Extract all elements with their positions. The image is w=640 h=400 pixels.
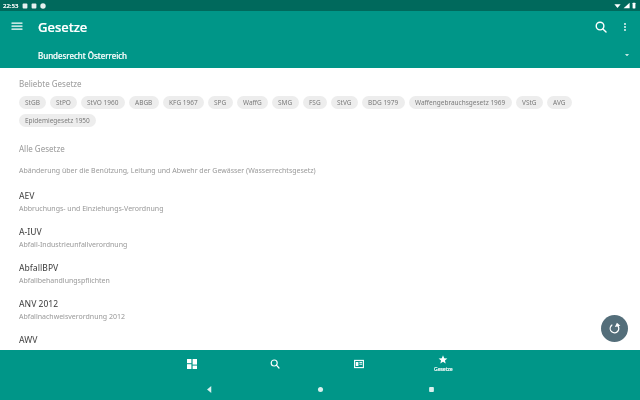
staticText: ANV 2012 xyxy=(19,298,59,310)
staticText: ABGB xyxy=(135,98,153,107)
button[interactable]: Back xyxy=(200,380,218,398)
button[interactable]: AVG xyxy=(547,96,572,109)
staticText: Abfallbehandlungspflichten xyxy=(19,276,110,286)
button[interactable]: Bundesrecht Österreich xyxy=(0,42,640,68)
staticText: Waffengebrauchsgesetz 1969 xyxy=(415,98,506,107)
button[interactable]: BDG 1979 xyxy=(362,96,405,109)
staticText: SPG xyxy=(214,98,227,107)
button[interactable]: Abänderung über die Benützung, Leitung u… xyxy=(0,166,640,190)
staticText: StPO xyxy=(56,98,71,107)
staticText: AEV xyxy=(19,190,35,202)
button[interactable]: Gesetze xyxy=(401,350,485,378)
staticText: 22:53 xyxy=(3,2,19,10)
button[interactable]: FSG xyxy=(303,96,327,109)
staticText: Epidemiegesetz 1950 xyxy=(25,116,90,125)
button[interactable]: Home xyxy=(311,380,329,398)
button[interactable]: KFG 1967 xyxy=(163,96,204,109)
button[interactable]: Übersicht xyxy=(150,350,233,378)
button[interactable]: Recent apps xyxy=(422,380,440,398)
button[interactable]: AEV xyxy=(0,190,640,226)
staticText: KFG 1967 xyxy=(169,98,198,107)
staticText: Abbruchungs- und Einziehungs-Verordnung xyxy=(19,204,164,214)
button[interactable]: Suche xyxy=(233,350,317,378)
staticText: VStG xyxy=(522,98,537,107)
staticText: AbfallBPV xyxy=(19,262,59,274)
staticText: Beliebte Gesetze xyxy=(19,78,82,89)
button[interactable]: Epidemiegesetz 1950 xyxy=(19,114,96,127)
button[interactable]: ANV 2012 xyxy=(0,298,640,334)
button[interactable]: AWV xyxy=(0,334,640,350)
button[interactable]: StPO xyxy=(50,96,77,109)
button[interactable]: SMG xyxy=(272,96,299,109)
button[interactable]: More options xyxy=(614,16,636,38)
staticText: StVG xyxy=(337,98,352,107)
button[interactable]: Waffengebrauchsgesetz 1969 xyxy=(409,96,512,109)
button[interactable]: StVG xyxy=(331,96,358,109)
staticText: StGB xyxy=(25,98,40,107)
button[interactable]: A-IUV xyxy=(0,226,640,262)
staticText: WaffG xyxy=(243,98,262,107)
staticText: A-IUV xyxy=(19,226,42,238)
button[interactable]: News xyxy=(317,350,401,378)
button[interactable]: StGB xyxy=(19,96,46,109)
button[interactable]: WaffG xyxy=(237,96,268,109)
button[interactable]: ABGB xyxy=(129,96,159,109)
staticText: SMG xyxy=(278,98,293,107)
staticText: Bundesrecht Österreich xyxy=(38,50,128,61)
staticText: AVG xyxy=(553,98,566,107)
button[interactable]: Search xyxy=(588,14,614,40)
button[interactable]: AbfallBPV xyxy=(0,262,640,298)
staticText: BDG 1979 xyxy=(368,98,399,107)
button[interactable]: Open navigation menu xyxy=(4,14,30,40)
staticText: Abfallnachweisverordnung 2012 xyxy=(19,312,125,322)
staticText: FSG xyxy=(309,98,321,107)
button[interactable]: Refresh xyxy=(601,315,628,342)
staticText: Alle Gesetze xyxy=(19,143,65,154)
button[interactable]: VStG xyxy=(516,96,543,109)
staticText: Abänderung über die Benützung, Leitung u… xyxy=(19,166,316,176)
button[interactable]: SPG xyxy=(208,96,233,109)
staticText: AWV xyxy=(19,334,38,346)
staticText: StVO 1960 xyxy=(87,98,119,107)
staticText: Abfall-Industrieunfallverordnung xyxy=(19,240,128,250)
staticText: Gesetze xyxy=(434,366,453,373)
button[interactable]: StVO 1960 xyxy=(81,96,125,109)
staticText: Gesetze xyxy=(38,18,88,36)
